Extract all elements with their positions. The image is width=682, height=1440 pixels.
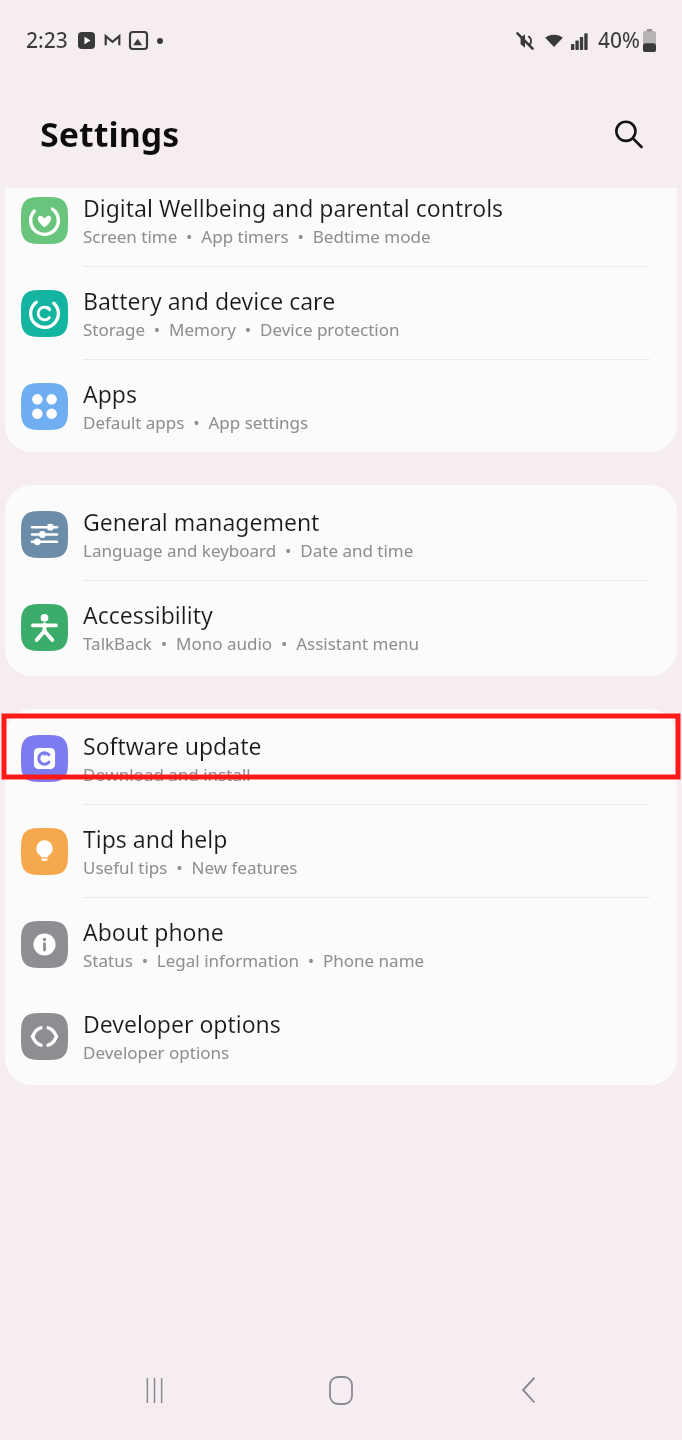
staticText: TalkBack • Mono audio • Assistant menu <box>83 632 420 655</box>
button[interactable]: Software update <box>5 712 677 804</box>
button[interactable]: Developer options <box>5 990 677 1082</box>
staticText: 2:23 <box>26 26 68 55</box>
staticText: Settings <box>40 111 180 157</box>
button[interactable]: Accessibility <box>5 581 677 673</box>
staticText: Developer options <box>83 1008 281 1039</box>
staticText: Digital Wellbeing and parental controls <box>83 192 504 223</box>
button[interactable]: Search <box>602 108 654 160</box>
staticText: Developer options <box>83 1041 230 1064</box>
button[interactable]: General management <box>5 488 677 580</box>
button[interactable]: Recent apps <box>121 1357 187 1423</box>
staticText: Storage • Memory • Device protection <box>83 318 400 341</box>
staticText: Status • Legal information • Phone name <box>83 949 425 972</box>
staticText: General management <box>83 506 320 537</box>
staticText: 40% <box>598 26 640 55</box>
button[interactable]: Battery and device care <box>5 267 677 359</box>
staticText: Software update <box>83 730 262 761</box>
staticText: About phone <box>83 916 224 947</box>
staticText: Useful tips • New features <box>83 856 298 879</box>
button[interactable]: Apps <box>5 360 677 452</box>
button[interactable]: About phone <box>5 898 677 990</box>
staticText: Tips and help <box>83 823 228 854</box>
staticText: Screen time • App timers • Bedtime mode <box>83 225 431 248</box>
button[interactable]: Digital Wellbeing and parental controls <box>5 188 677 266</box>
button[interactable]: Tips and help <box>5 805 677 897</box>
staticText: Apps <box>83 378 138 409</box>
button[interactable]: Home <box>308 1357 374 1423</box>
button[interactable]: Back <box>495 1357 561 1423</box>
staticText: Battery and device care <box>83 285 336 316</box>
staticText: Language and keyboard • Date and time <box>83 539 414 562</box>
staticText: Accessibility <box>83 599 213 630</box>
staticText: Default apps • App settings <box>83 411 309 434</box>
staticText: Download and install <box>83 763 251 786</box>
